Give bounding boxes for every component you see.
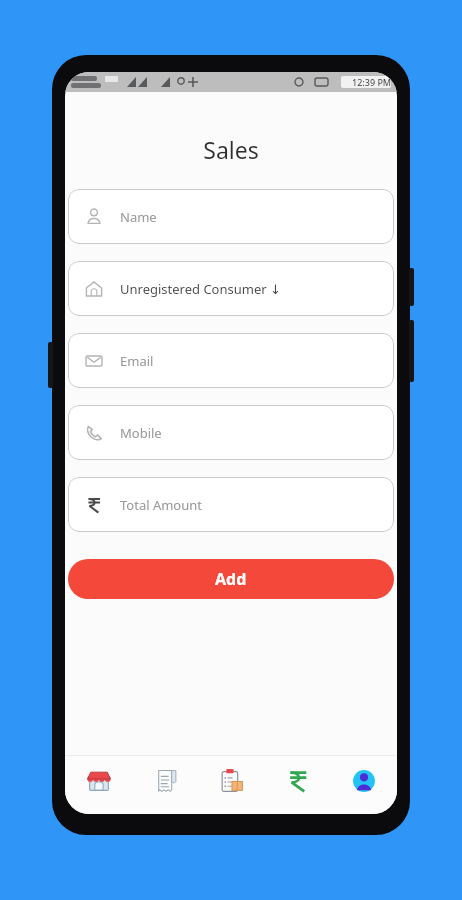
button[interactable]: Payments: [265, 756, 331, 814]
button[interactable]: Total Amount: [68, 477, 394, 532]
button[interactable]: Email: [68, 333, 394, 388]
button[interactable]: Add: [68, 559, 394, 599]
staticText: 12:39 PM: [352, 76, 392, 88]
staticText: Add: [215, 568, 247, 590]
staticText: Sales: [65, 134, 397, 165]
button[interactable]: Invoices: [132, 756, 199, 814]
staticText: Mobile: [120, 424, 162, 442]
button[interactable]: Shop: [65, 756, 132, 814]
staticText: Total Amount: [120, 496, 202, 514]
button[interactable]: Profile: [331, 756, 397, 814]
staticText: Name: [120, 208, 157, 226]
staticText: Email: [120, 352, 154, 370]
button[interactable]: Unregistered Consumer ↓: [68, 261, 394, 316]
staticText: Unregistered Consumer ↓: [120, 280, 281, 298]
button[interactable]: Mobile: [68, 405, 394, 460]
button[interactable]: Name: [68, 189, 394, 244]
button[interactable]: Orders: [199, 756, 265, 814]
